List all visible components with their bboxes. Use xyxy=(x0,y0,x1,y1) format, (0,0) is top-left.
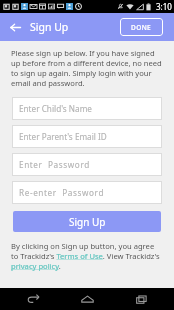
staticText: Enter Password xyxy=(19,159,90,170)
staticText: Re-enter Password xyxy=(19,187,105,198)
button[interactable]: Enter Child's Name xyxy=(12,97,162,120)
button[interactable]: By clicking on Sign up button, you agree… xyxy=(11,241,163,271)
button[interactable]: Sign Up xyxy=(13,211,161,232)
button[interactable]: Recent apps xyxy=(121,288,161,310)
button[interactable]: Enter Parent's Email ID xyxy=(12,125,162,148)
staticText: Sign Up xyxy=(30,20,69,34)
staticText: Enter Parent's Email ID xyxy=(19,131,107,142)
button[interactable]: Back xyxy=(14,288,54,310)
staticText: Please sign up below. If you have signed… xyxy=(11,48,163,88)
button[interactable]: DONE xyxy=(120,18,163,36)
staticText: 3:10 xyxy=(156,1,172,12)
button[interactable]: Home xyxy=(67,288,107,310)
staticText: DONE xyxy=(131,23,152,32)
button[interactable]: Back xyxy=(6,18,24,36)
button[interactable]: Enter Password xyxy=(12,153,162,176)
button[interactable]: Re-enter Password xyxy=(12,181,162,204)
staticText: Enter Child's Name xyxy=(19,103,92,114)
staticText: Sign Up xyxy=(69,215,106,229)
